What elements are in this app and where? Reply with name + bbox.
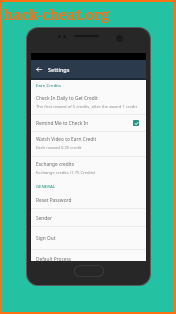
staticText: Reset Password — [36, 197, 72, 204]
button[interactable]: Exchange credits — [31, 157, 146, 181]
staticText: Check In Daily to Get Credit — [36, 95, 98, 102]
staticText: Watch Video to Earn Credit — [36, 136, 97, 143]
button[interactable]: Sign Out — [31, 227, 146, 250]
staticText: Exchange credits — [36, 161, 75, 168]
button[interactable]: Watch Video to Earn Credit — [31, 132, 146, 157]
button[interactable]: Check In Daily to Get Credit — [31, 91, 146, 115]
staticText: Each reward 0.25 credit — [36, 145, 82, 151]
button[interactable]: Reset Password — [31, 192, 146, 209]
staticText: Remind Me to Check In — [36, 120, 89, 127]
staticText: hack-cheat.org — [4, 5, 110, 24]
staticText: Earn Credits — [36, 82, 61, 88]
button[interactable]: Default Process — [31, 250, 146, 268]
staticText: Exchange credits (1.75 Credits) — [36, 170, 96, 176]
staticText: Default Process — [36, 256, 72, 263]
staticText: GENERAL — [36, 183, 56, 189]
staticText: Sign Out — [36, 235, 56, 242]
button[interactable]: Remind Me to Check In — [31, 114, 146, 132]
button[interactable]: Sender — [31, 210, 146, 227]
button[interactable]: Back — [31, 60, 47, 78]
staticText: Sender — [36, 215, 52, 222]
staticText: The first reward of 5 credits, after the… — [36, 104, 137, 110]
staticText: Settings — [48, 66, 70, 73]
